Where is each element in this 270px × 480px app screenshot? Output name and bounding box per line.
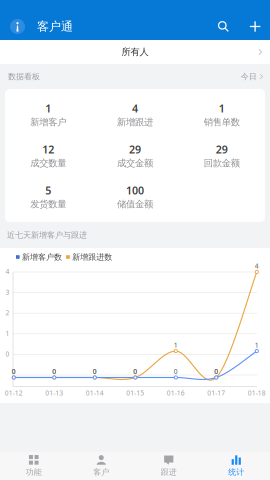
staticText: 统计 [228,467,244,477]
staticText: 4 [132,101,138,115]
button[interactable]: 搜索 [210,17,242,36]
staticText: 0 [12,367,16,376]
staticText: 成交数量 [30,157,66,169]
staticText: 1 [174,341,178,350]
staticText: 01-15 [126,389,144,397]
staticText: 29 [129,142,141,156]
staticText: 近七天新增客户与跟进 [7,230,87,240]
staticText: 发货数量 [30,198,66,210]
staticText: 0 [174,367,178,376]
staticText: 新增跟进 [117,116,153,128]
staticText: 成交金额 [117,157,153,169]
staticText: 100 [126,183,144,197]
button[interactable]: 功能 [0,452,67,480]
staticText: 客户通 [37,19,73,34]
button[interactable]: 统计 [202,452,270,480]
staticText: 2 [5,308,9,317]
staticText: 0 [133,367,137,376]
button[interactable]: 今日 [241,68,270,85]
staticText: 0 [5,349,9,358]
staticText: 01-12 [5,389,23,397]
staticText: 0 [52,367,56,376]
staticText: 4 [255,261,259,270]
staticText: 01-13 [45,389,63,397]
staticText: 3 [5,288,9,297]
staticText: 储值金额 [117,198,153,210]
staticText: 今日 [241,72,257,81]
staticText: 销售单数 [204,116,240,128]
staticText: 0 [133,367,137,376]
staticText: 所有人 [121,46,148,58]
staticText: 新增客户 [30,116,66,128]
staticText: 新增客户数 [22,252,62,262]
staticText: 01-16 [167,389,185,397]
staticText: 5 [45,183,51,197]
staticText: 0 [12,367,16,376]
staticText: 1 [219,101,225,115]
staticText: 01-18 [248,389,266,397]
staticText: 0 [214,367,218,376]
staticText: 1 [255,341,259,350]
staticText: 0 [52,367,56,376]
staticText: 0 [214,367,218,376]
staticText: 29 [216,142,228,156]
staticText: 0 [93,367,97,376]
staticText: 1 [45,101,51,115]
button[interactable]: 所有人 [0,40,270,64]
staticText: 客户 [93,467,109,477]
button[interactable]: 新增 [242,17,267,36]
staticText: 数据看板 [8,72,40,81]
staticText: 12 [42,142,54,156]
staticText: 回款金额 [204,157,240,169]
staticText: 0 [93,367,97,376]
staticText: 1 [5,329,9,338]
staticText: 01-17 [207,389,225,397]
staticText: 01-14 [86,389,104,397]
button[interactable]: 客户 [67,452,135,480]
staticText: 功能 [26,467,42,477]
staticText: 4 [5,267,9,276]
staticText: 新增跟进数 [72,252,112,262]
button[interactable]: 跟进 [135,452,202,480]
staticText: 跟进 [161,467,177,477]
